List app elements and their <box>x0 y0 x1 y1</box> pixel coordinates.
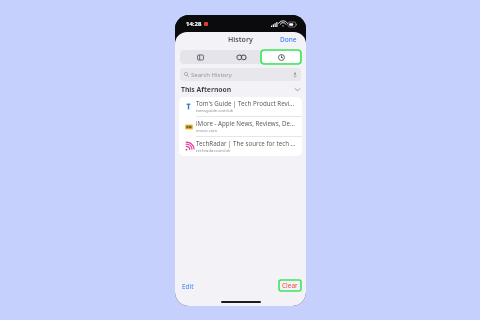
staticText: 14:28 <box>186 20 202 28</box>
staticText: Edit <box>182 282 194 291</box>
other: Voice search <box>293 72 297 78</box>
staticText: Done <box>280 35 297 44</box>
button[interactable]: Bookmarks <box>181 51 220 63</box>
button[interactable]: Clear <box>279 280 301 291</box>
button[interactable]: This Afternoon <box>175 84 306 95</box>
staticText: iMore - Apple News, Reviews, Deals... <box>196 119 297 127</box>
button[interactable]: TechRadar | The source for tech buy... <box>179 137 302 156</box>
staticText: TechRadar | The source for tech buy... <box>196 139 297 147</box>
staticText: History <box>228 35 253 45</box>
staticText: imore.com <box>196 128 218 134</box>
staticText: Search History <box>191 71 232 79</box>
staticText: Tom's Guide | Tech Product Reviews... <box>196 99 297 107</box>
staticText: This Afternoon <box>181 85 232 94</box>
button[interactable]: Edit <box>180 281 196 292</box>
button[interactable]: iMore - Apple News, Reviews, Deals... <box>179 117 302 136</box>
button[interactable]: Done <box>278 34 299 45</box>
button[interactable]: Search History <box>180 68 301 81</box>
staticText: techradar.com/uk <box>196 148 231 154</box>
button[interactable]: Tom's Guide | Tech Product Reviews... <box>179 97 302 116</box>
staticText: tomsguide.com/uk <box>196 108 234 114</box>
button[interactable]: History <box>262 51 300 63</box>
staticText: Clear <box>282 281 298 290</box>
button[interactable]: Reading List <box>222 51 260 63</box>
